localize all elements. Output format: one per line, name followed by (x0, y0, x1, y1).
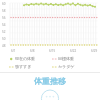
staticText: 目標体重 (58, 56, 74, 61)
staticText: 56 (2, 16, 6, 20)
staticText: 6/22 (70, 49, 77, 53)
button[interactable]: Add record (41, 89, 59, 100)
staticText: 50 (2, 37, 6, 41)
staticText: 6/15 (49, 49, 56, 53)
button[interactable]: 現在の体重 (9, 56, 52, 61)
staticText: 6/8 (30, 49, 35, 53)
staticText: 6/29 (91, 49, 98, 53)
staticText: 体重推移 (34, 76, 66, 86)
staticText: 現在の体重 (15, 56, 36, 61)
staticText: 6/1 (11, 49, 16, 53)
button[interactable]: 脂すすぎ (9, 64, 52, 69)
staticText: カラダゲ (58, 64, 75, 69)
staticText: 58 (2, 9, 6, 13)
staticText: 脂すすぎ (15, 64, 32, 69)
staticText: 60 (2, 2, 6, 6)
staticText: 48 (2, 44, 6, 48)
button[interactable]: カラダゲ (52, 64, 96, 69)
staticText: 52 (2, 30, 6, 34)
button[interactable]: 目標体重 (52, 56, 96, 61)
staticText: 54 (2, 23, 6, 27)
